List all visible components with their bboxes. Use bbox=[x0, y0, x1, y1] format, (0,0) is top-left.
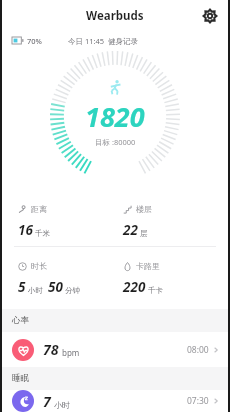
staticText: 目标 :80000 bbox=[95, 137, 136, 147]
staticText: 心率 bbox=[12, 315, 29, 326]
staticText: Wearbuds bbox=[86, 8, 144, 24]
staticText: 卡路里 bbox=[136, 261, 160, 271]
button[interactable]: Sleep details bbox=[0, 390, 230, 412]
staticText: bpm bbox=[62, 347, 80, 358]
staticText: 千卡 bbox=[148, 286, 163, 295]
staticText: 层 bbox=[140, 229, 148, 238]
button[interactable]: Settings bbox=[199, 5, 221, 27]
staticText: 70% bbox=[27, 36, 42, 46]
staticText: 时长 bbox=[31, 261, 47, 271]
staticText: 220 bbox=[123, 278, 146, 296]
button[interactable]: 时长 bbox=[0, 247, 115, 303]
staticText: 22 bbox=[123, 221, 138, 239]
staticText: 小时 bbox=[54, 400, 70, 410]
staticText: 50 bbox=[48, 278, 63, 296]
button[interactable]: 卡路里 bbox=[115, 247, 230, 303]
button[interactable]: 距离 bbox=[0, 190, 115, 246]
staticText: 08:00 bbox=[187, 344, 209, 356]
staticText: 睡眠 bbox=[12, 373, 29, 384]
staticText: 5 bbox=[18, 278, 26, 296]
staticText: 78 bbox=[43, 340, 59, 359]
staticText: 今日 11:45 健身记录 bbox=[68, 36, 139, 46]
staticText: 分钟 bbox=[65, 286, 80, 295]
staticText: 楼层 bbox=[136, 204, 152, 214]
button[interactable]: Heart rate details bbox=[0, 332, 230, 367]
staticText: 07:30 bbox=[187, 395, 209, 407]
staticText: 千米 bbox=[35, 229, 50, 238]
staticText: 小时 bbox=[28, 286, 43, 295]
staticText: 距离 bbox=[31, 204, 47, 214]
button[interactable]: 楼层 bbox=[115, 190, 230, 246]
staticText: 7 bbox=[43, 392, 51, 411]
staticText: 1820 bbox=[85, 98, 145, 135]
staticText: 16 bbox=[18, 221, 33, 239]
